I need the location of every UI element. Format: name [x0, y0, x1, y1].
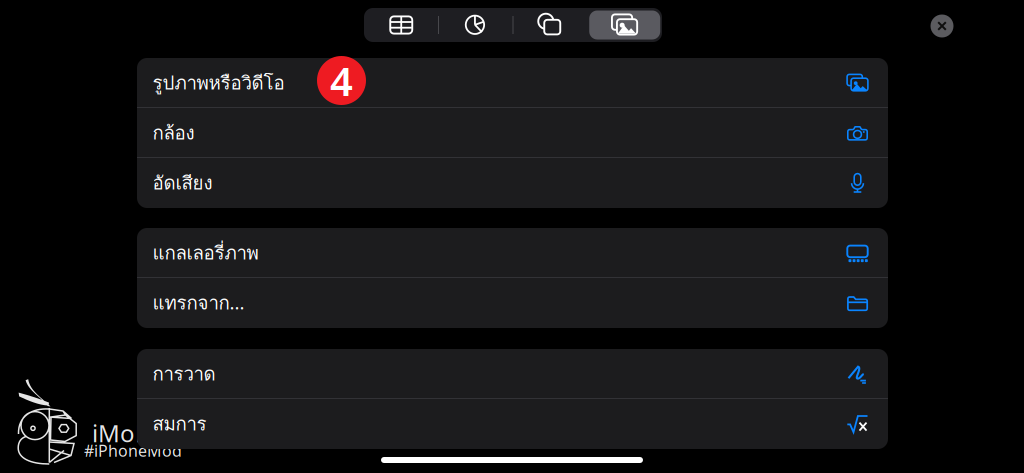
staticText: แทรกจาก... — [152, 288, 244, 317]
button[interactable]: Close — [920, 4, 964, 48]
staticText: #iPhoneMod — [84, 440, 182, 461]
staticText: 4 — [330, 54, 353, 107]
button[interactable]: Insert chart — [438, 8, 513, 42]
staticText: แกลเลอรี่ภาพ — [152, 238, 258, 267]
button[interactable]: อัดเสียง — [137, 158, 888, 208]
button[interactable]: แทรกจาก... — [137, 278, 888, 328]
button[interactable]: สมการ — [137, 399, 888, 449]
staticText: อัดเสียง — [152, 168, 212, 197]
button[interactable]: รูปภาพหรือวิดีโอ — [137, 58, 888, 108]
staticText: รูปภาพหรือวิดีโอ — [152, 68, 284, 97]
button[interactable]: Insert table — [364, 8, 438, 42]
button[interactable]: การวาด — [137, 349, 888, 399]
button[interactable]: แกลเลอรี่ภาพ — [137, 228, 888, 278]
button[interactable]: Insert media, selected — [587, 8, 662, 42]
staticText: การวาด — [152, 359, 215, 388]
button[interactable]: Insert shape — [513, 8, 587, 42]
staticText: กล้อง — [152, 118, 194, 147]
staticText: iMoD — [92, 417, 153, 449]
button[interactable]: กล้อง — [137, 108, 888, 158]
staticText: สมการ — [152, 409, 206, 438]
